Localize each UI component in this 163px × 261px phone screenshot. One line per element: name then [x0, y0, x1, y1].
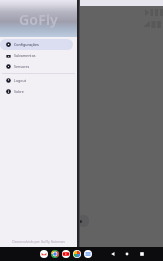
button[interactable]: Back [109, 250, 117, 258]
button[interactable]: Photos [73, 250, 81, 258]
button[interactable]: YouTube [62, 250, 70, 258]
button[interactable]: Chrome [51, 250, 59, 258]
button[interactable]: Home [123, 250, 131, 258]
staticText: Desenvolvido por GoFly Sistemas [12, 239, 65, 244]
staticText: GoFly [19, 10, 58, 29]
button[interactable]: Recent apps [138, 250, 146, 258]
button[interactable]: Gmail [40, 250, 48, 258]
button[interactable]: Salvamentos [0, 50, 73, 61]
staticText: Logout [14, 78, 26, 83]
button[interactable]: Logout [0, 75, 73, 86]
staticText: Sensores [14, 64, 30, 69]
staticText: Configurações [14, 42, 39, 47]
button[interactable]: App [84, 250, 92, 258]
staticText: Salvamentos [14, 53, 36, 58]
button[interactable]: Configurações [0, 39, 73, 50]
button[interactable]: Sensores [0, 61, 73, 72]
button[interactable]: Sobre [0, 86, 73, 97]
staticText: Sobre [14, 89, 24, 94]
